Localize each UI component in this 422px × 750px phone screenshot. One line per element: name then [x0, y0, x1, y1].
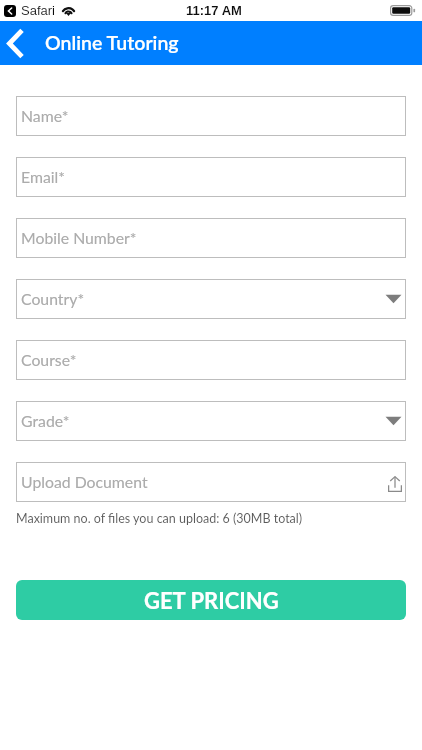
- staticText: Online Tutoring: [45, 31, 179, 54]
- staticText: Mobile Number*: [21, 228, 137, 247]
- button[interactable]: Course*: [16, 340, 406, 380]
- button[interactable]: Grade*: [16, 401, 406, 441]
- other: Open dropdown: [385, 294, 402, 304]
- staticText: Upload Document: [21, 472, 148, 491]
- button[interactable]: GET PRICING: [16, 580, 406, 620]
- button[interactable]: Country*: [16, 279, 406, 319]
- button[interactable]: Back: [0, 21, 44, 65]
- other: Upload document: [388, 476, 402, 492]
- button[interactable]: Name*: [16, 96, 406, 136]
- other: Open dropdown: [385, 416, 402, 426]
- staticText: Safari: [21, 3, 55, 18]
- staticText: Name*: [21, 106, 69, 125]
- staticText: Maximum no. of files you can upload: 6 (…: [16, 511, 303, 526]
- staticText: Grade*: [21, 411, 70, 430]
- button[interactable]: Upload Document: [16, 462, 406, 502]
- staticText: GET PRICING: [144, 587, 279, 613]
- staticText: Email*: [21, 167, 65, 186]
- button[interactable]: Back to Safari: [4, 5, 16, 17]
- staticText: Country*: [21, 289, 85, 308]
- staticText: Course*: [21, 350, 77, 369]
- staticText: 11:17 AM: [186, 3, 242, 18]
- button[interactable]: Mobile Number*: [16, 218, 406, 258]
- button[interactable]: Email*: [16, 157, 406, 197]
